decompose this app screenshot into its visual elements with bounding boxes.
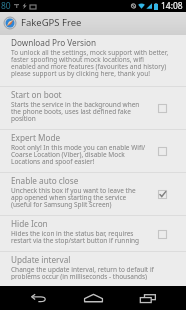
staticText: Start on boot (11, 89, 62, 100)
button[interactable]: Download Pro Version (0, 35, 186, 78)
button[interactable]: Home (67, 286, 119, 310)
button[interactable]: Start on boot (154, 100, 170, 116)
staticText: Change the update interval, return to de… (11, 265, 154, 280)
button[interactable]: Expert Mode (0, 130, 186, 172)
button[interactable]: Start on boot (0, 87, 186, 129)
staticText: Starts the service in the background whe… (11, 100, 140, 123)
staticText: To unlock all the settings, mock support… (11, 48, 169, 78)
staticText: Download Pro Version (11, 37, 97, 48)
button[interactable]: Recents (119, 286, 176, 310)
staticText: Root only! In this mode you can enable W… (11, 143, 146, 166)
button[interactable]: Enable auto close (154, 186, 170, 202)
staticText: Hides the icon in the status bar, requir… (11, 229, 140, 245)
button[interactable]: Enable auto close (0, 173, 186, 215)
staticText: Update interval (11, 254, 71, 265)
staticText: Hide Icon (11, 218, 48, 229)
staticText: Enable auto close (11, 175, 79, 186)
button[interactable]: Back (10, 286, 67, 310)
staticText: FakeGPS Free (21, 16, 82, 29)
button[interactable]: Hide Icon (0, 216, 186, 251)
staticText: Expert Mode (11, 132, 61, 143)
staticText: Uncheck this box if you want to leave th… (11, 186, 136, 209)
staticText: 80 (1, 0, 11, 12)
button[interactable]: Hide Icon (154, 226, 170, 242)
button[interactable]: Update interval (0, 252, 186, 286)
button[interactable]: Expert Mode (154, 143, 170, 159)
staticText: 14:08 (161, 0, 183, 12)
